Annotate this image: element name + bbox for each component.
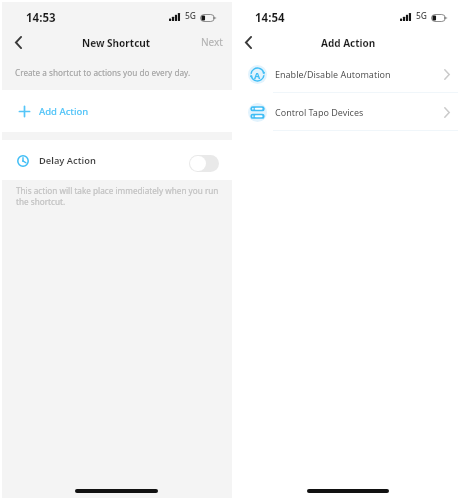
staticText: Control Tapo Devices [275,106,364,118]
button[interactable]: A [232,55,458,93]
staticText: New Shortcut [82,36,151,50]
staticText: A [254,69,261,81]
button[interactable]: Add Action [0,90,232,132]
staticText: Next [201,35,223,49]
button[interactable]: Back [235,29,261,55]
button[interactable]: Control Tapo Devices [232,93,458,131]
button[interactable]: Next [192,31,232,53]
staticText: Delay Action [39,154,96,167]
staticText: 14:53 [26,10,56,26]
button[interactable]: Delay Action toggle [189,155,219,172]
staticText: 5G [416,10,428,22]
staticText: This action will take place immediately … [16,185,219,207]
staticText: Add Action [321,36,376,50]
staticText: Add Action [39,105,89,118]
button[interactable]: Delay Action [0,140,232,180]
staticText: Enable/Disable Automation [275,68,391,80]
staticText: Create a shortcut to actions you do ever… [15,67,191,78]
staticText: 14:54 [255,10,285,26]
staticText: 5G [185,10,197,22]
button[interactable]: Back [5,29,31,55]
